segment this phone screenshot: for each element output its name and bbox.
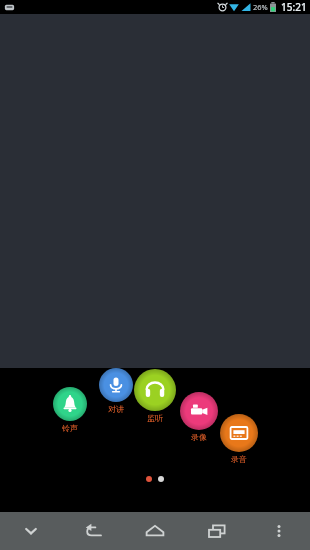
button[interactable]: 监听	[134, 369, 176, 423]
staticText: 26%	[253, 2, 268, 12]
button[interactable]: Home	[124, 512, 186, 550]
staticText: 铃声	[62, 423, 78, 433]
button[interactable]: 录像	[180, 392, 218, 442]
button[interactable]: 录音	[220, 414, 258, 464]
staticText: 15:21	[281, 0, 307, 14]
button[interactable]: Hide keyboard	[0, 512, 62, 550]
staticText: 录像	[191, 432, 207, 442]
button[interactable]: Back	[62, 512, 124, 550]
staticText: 录音	[231, 454, 247, 464]
staticText: 对讲	[108, 404, 124, 414]
staticText: 监听	[147, 413, 163, 423]
button[interactable]: 对讲	[99, 368, 133, 414]
button[interactable]: More options	[248, 512, 310, 550]
button[interactable]: Recents	[186, 512, 248, 550]
button[interactable]: 铃声	[53, 387, 87, 433]
